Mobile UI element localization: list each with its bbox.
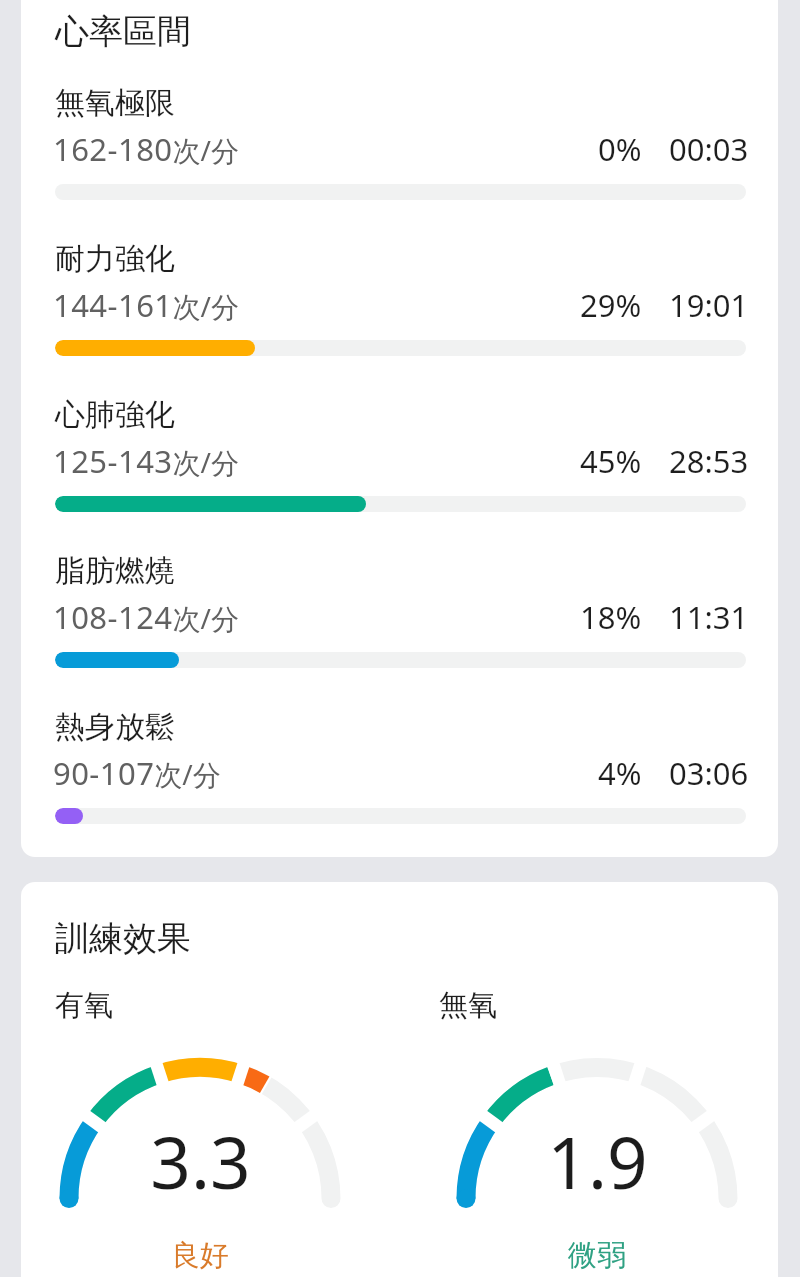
- staticText: 脂肪燃燒: [55, 552, 175, 590]
- staticText: 1.9: [547, 1113, 648, 1210]
- button[interactable]: 無氧: [439, 987, 775, 1241]
- button[interactable]: 心肺強化: [55, 396, 746, 552]
- button[interactable]: 熱身放鬆: [55, 708, 746, 857]
- staticText: 125-143次/分: [53, 440, 239, 482]
- staticText: 良好: [171, 1237, 229, 1274]
- staticText: 108-124次/分: [53, 596, 239, 638]
- staticText: 0%: [598, 128, 642, 170]
- staticText: 90-107次/分: [53, 752, 221, 794]
- staticText: 28:53: [669, 440, 749, 482]
- staticText: 有氧: [55, 987, 113, 1024]
- staticText: 訓練效果: [55, 917, 191, 960]
- staticText: 無氧極限: [55, 84, 175, 122]
- other: 有氧 訓練效果 3.3: [55, 1046, 345, 1216]
- staticText: 19:01: [669, 284, 749, 326]
- staticText: 熱身放鬆: [55, 708, 175, 746]
- button[interactable]: 耐力強化: [55, 240, 746, 396]
- staticText: 18%: [580, 596, 642, 638]
- staticText: 4%: [598, 752, 642, 794]
- staticText: 03:06: [669, 752, 749, 794]
- staticText: 心肺強化: [55, 396, 175, 434]
- staticText: 00:03: [669, 128, 749, 170]
- staticText: 144-161次/分: [53, 284, 239, 326]
- staticText: 162-180次/分: [53, 128, 239, 170]
- staticText: 11:31: [669, 596, 749, 638]
- staticText: 45%: [580, 440, 642, 482]
- button[interactable]: 有氧: [55, 987, 391, 1241]
- staticText: 無氧: [439, 987, 497, 1024]
- other: 無氧 訓練效果 1.9: [452, 1046, 742, 1216]
- staticText: 29%: [580, 284, 642, 326]
- button[interactable]: 無氧極限: [55, 84, 746, 240]
- staticText: 微弱: [568, 1237, 626, 1274]
- button[interactable]: 脂肪燃燒: [55, 552, 746, 708]
- staticText: 心率區間: [55, 10, 191, 53]
- staticText: 3.3: [150, 1113, 251, 1210]
- staticText: 耐力強化: [55, 240, 175, 278]
